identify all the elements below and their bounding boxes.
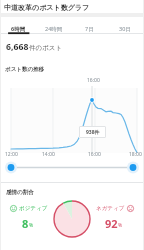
button[interactable]: 7日	[71, 17, 107, 34]
button[interactable]: ポジティブ	[10, 205, 48, 212]
staticText: 24時間	[45, 25, 63, 33]
staticText: 16:00	[87, 77, 100, 84]
staticText: 30日	[119, 25, 131, 33]
staticText: ポスト数の推移	[5, 66, 45, 73]
staticText: 中道改革のポスト数グラフ	[4, 3, 90, 12]
staticText: 12:00	[5, 151, 18, 158]
staticText: %	[29, 222, 34, 229]
staticText: 8	[22, 216, 29, 231]
staticText: ポジティブ	[19, 205, 48, 212]
staticText: 938件	[86, 129, 100, 136]
staticText: 92	[105, 216, 118, 231]
staticText: 感情の割合	[6, 189, 34, 196]
staticText: 7日	[85, 25, 94, 33]
button[interactable]: 6時間	[1, 17, 36, 34]
staticText: 6時間	[11, 25, 26, 33]
staticText: 件のポスト	[29, 44, 63, 52]
staticText: 6,668	[6, 41, 29, 53]
staticText: 14:00	[42, 151, 55, 158]
staticText: ネガティブ	[96, 205, 125, 212]
staticText: 16:00	[88, 151, 101, 158]
staticText: %	[118, 222, 123, 229]
button[interactable]: 30日	[107, 17, 143, 34]
button[interactable]: 24時間	[36, 17, 71, 34]
button[interactable]: Time range slider	[1, 160, 143, 176]
button[interactable]: ネガティブ	[96, 205, 134, 212]
staticText: 18:00	[129, 151, 142, 158]
